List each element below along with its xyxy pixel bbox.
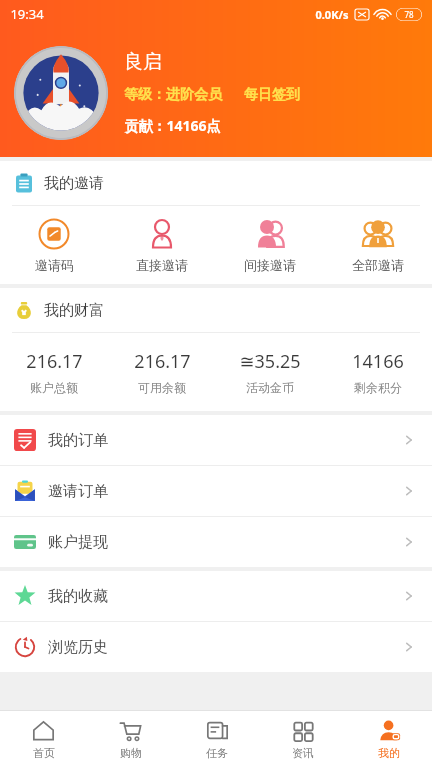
button[interactable]: 全部邀请 (324, 206, 432, 284)
staticText: 浏览历史 (48, 638, 108, 657)
staticText: 0.0K/s (315, 7, 349, 22)
staticText: 216.17 (134, 349, 191, 374)
button[interactable]: 我的订单 (0, 415, 432, 465)
button[interactable]: 间接邀请 (216, 206, 324, 284)
button[interactable]: 直接邀请 (108, 206, 216, 284)
staticText: 等级：进阶会员 (124, 86, 222, 104)
staticText: 216.17 (26, 349, 83, 374)
staticText: 我的财富 (44, 301, 104, 320)
staticText: 直接邀请 (136, 257, 188, 273)
staticText: 全部邀请 (352, 257, 404, 273)
button[interactable]: ≅35.25 (216, 333, 324, 411)
button[interactable]: 每日签到 (244, 86, 300, 104)
staticText: 19:34 (10, 5, 44, 23)
staticText: 剩余积分 (354, 380, 402, 395)
staticText: 账户提现 (48, 533, 108, 552)
button[interactable]: 我的 (346, 711, 432, 768)
staticText: 任务 (206, 746, 228, 760)
button[interactable]: 浏览历史 (0, 622, 432, 672)
staticText: 邀请订单 (48, 482, 108, 501)
staticText: 首页 (33, 746, 55, 760)
staticText: 14166 (352, 349, 404, 374)
staticText: 我的 (378, 746, 400, 760)
staticText: 购物 (120, 746, 142, 760)
staticText: 贡献：14166点 (124, 116, 221, 135)
staticText: 活动金币 (246, 380, 294, 395)
staticText: 我的邀请 (44, 174, 104, 193)
button[interactable] (14, 46, 108, 140)
staticText: 账户总额 (30, 380, 78, 395)
staticText: 每日签到 (244, 86, 300, 104)
button[interactable]: 账户提现 (0, 517, 432, 567)
button[interactable]: 216.17 (108, 333, 216, 411)
staticText: 可用余额 (138, 380, 186, 395)
button[interactable]: 我的收藏 (0, 571, 432, 621)
button[interactable]: 资讯 (260, 711, 346, 768)
staticText: 我的收藏 (48, 587, 108, 606)
staticText: 我的订单 (48, 431, 108, 450)
button[interactable]: 邀请订单 (0, 466, 432, 516)
staticText: ≅35.25 (239, 349, 301, 374)
button[interactable]: 14166 (324, 333, 432, 411)
button[interactable]: 购物 (87, 711, 174, 768)
staticText: 良启 (124, 50, 162, 74)
staticText: 间接邀请 (244, 257, 296, 273)
button[interactable]: 216.17 (0, 333, 108, 411)
staticText: 78 (404, 9, 414, 20)
button[interactable]: 邀请码 (0, 206, 108, 284)
staticText: 资讯 (292, 746, 314, 760)
button[interactable]: 任务 (174, 711, 260, 768)
staticText: 邀请码 (35, 257, 74, 273)
button[interactable]: 首页 (0, 711, 87, 768)
